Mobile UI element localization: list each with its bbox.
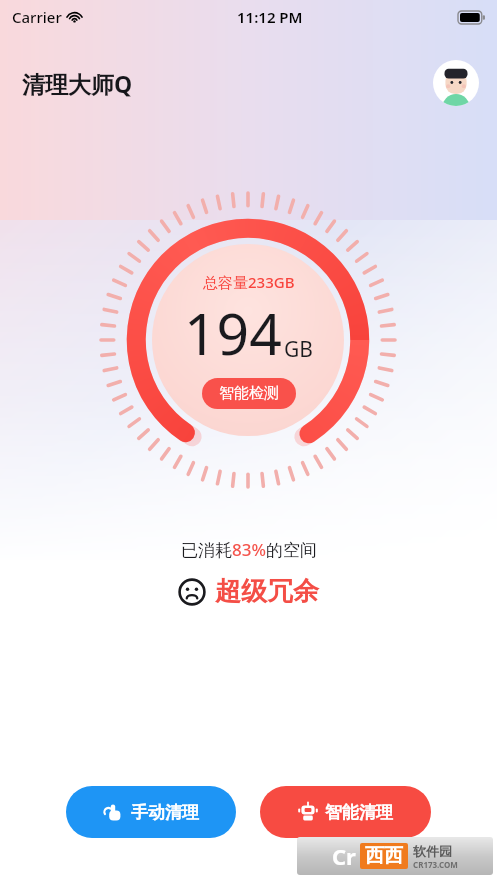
staticText: Carrier <box>12 7 62 27</box>
staticText: GB <box>284 335 313 364</box>
staticText: CR173.COM <box>413 859 458 870</box>
staticText: 清理大师Q <box>22 68 133 99</box>
staticText: 超级冗余 <box>215 575 319 608</box>
staticText: 智能检测 <box>219 384 279 403</box>
staticText: 手动清理 <box>131 802 199 823</box>
staticText: 总容量233GB <box>203 272 295 292</box>
staticText: 智能清理 <box>325 802 393 823</box>
staticText: 已消耗83%的空间 <box>181 538 317 561</box>
staticText: 11:12 PM <box>237 7 303 27</box>
button[interactable]: 手动清理 <box>66 786 236 838</box>
staticText: 西西 <box>365 844 403 868</box>
staticText: 194 <box>184 294 282 372</box>
button[interactable]: Profile <box>433 60 479 106</box>
staticText: Cr <box>332 841 356 871</box>
button[interactable]: 智能检测 <box>202 378 296 409</box>
button[interactable]: 智能清理 <box>260 786 431 838</box>
staticText: 软件园 <box>413 843 452 859</box>
